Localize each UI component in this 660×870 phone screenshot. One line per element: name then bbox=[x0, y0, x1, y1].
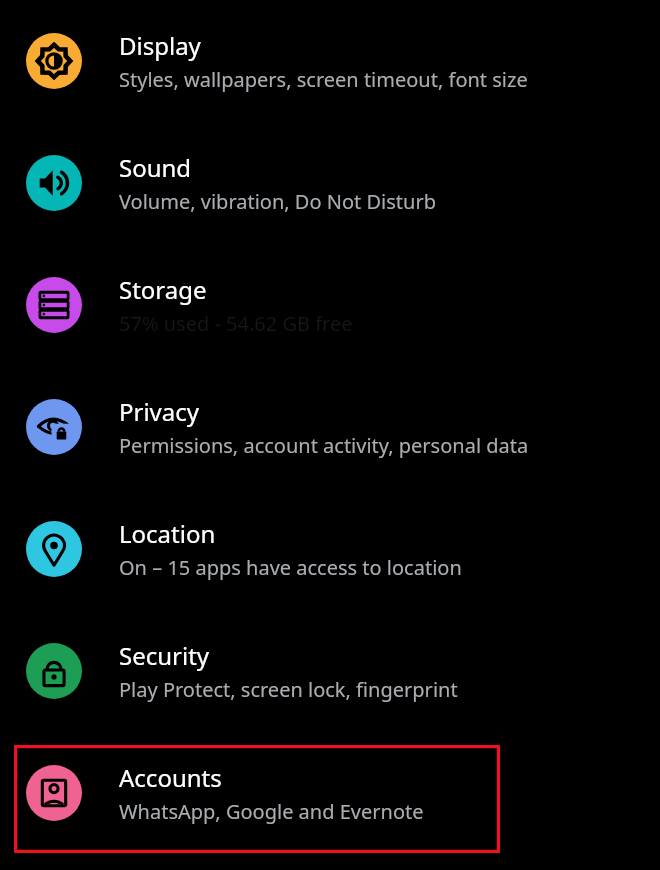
button[interactable]: Security bbox=[0, 610, 660, 732]
other: Privacy bbox=[26, 399, 82, 455]
staticText: Styles, wallpapers, screen timeout, font… bbox=[119, 66, 528, 93]
staticText: Location bbox=[119, 517, 216, 550]
button[interactable]: Display bbox=[0, 0, 660, 122]
staticText: Volume, vibration, Do Not Disturb bbox=[119, 188, 436, 215]
staticText: Storage bbox=[119, 273, 207, 306]
staticText: Privacy bbox=[119, 395, 200, 428]
other: Security bbox=[26, 643, 82, 699]
other: Storage bbox=[26, 277, 82, 333]
other: Display bbox=[26, 33, 82, 89]
staticText: On – 15 apps have access to location bbox=[119, 554, 462, 581]
staticText: Accounts bbox=[119, 761, 222, 794]
button[interactable]: Privacy bbox=[0, 366, 660, 488]
button[interactable]: Sound bbox=[0, 122, 660, 244]
staticText: Sound bbox=[119, 151, 192, 184]
button[interactable]: Storage bbox=[0, 244, 660, 366]
other: Location bbox=[26, 521, 82, 577]
button[interactable]: Accounts bbox=[0, 732, 660, 854]
staticText: WhatsApp, Google and Evernote bbox=[119, 798, 424, 825]
staticText: Security bbox=[119, 639, 210, 672]
other: Sound bbox=[26, 155, 82, 211]
staticText: Permissions, account activity, personal … bbox=[119, 432, 529, 459]
other: Accounts bbox=[26, 765, 82, 821]
staticText: 57% used - 54.62 GB free bbox=[119, 310, 353, 337]
button[interactable]: Location bbox=[0, 488, 660, 610]
staticText: Display bbox=[119, 29, 201, 62]
staticText: Play Protect, screen lock, fingerprint bbox=[119, 676, 458, 703]
